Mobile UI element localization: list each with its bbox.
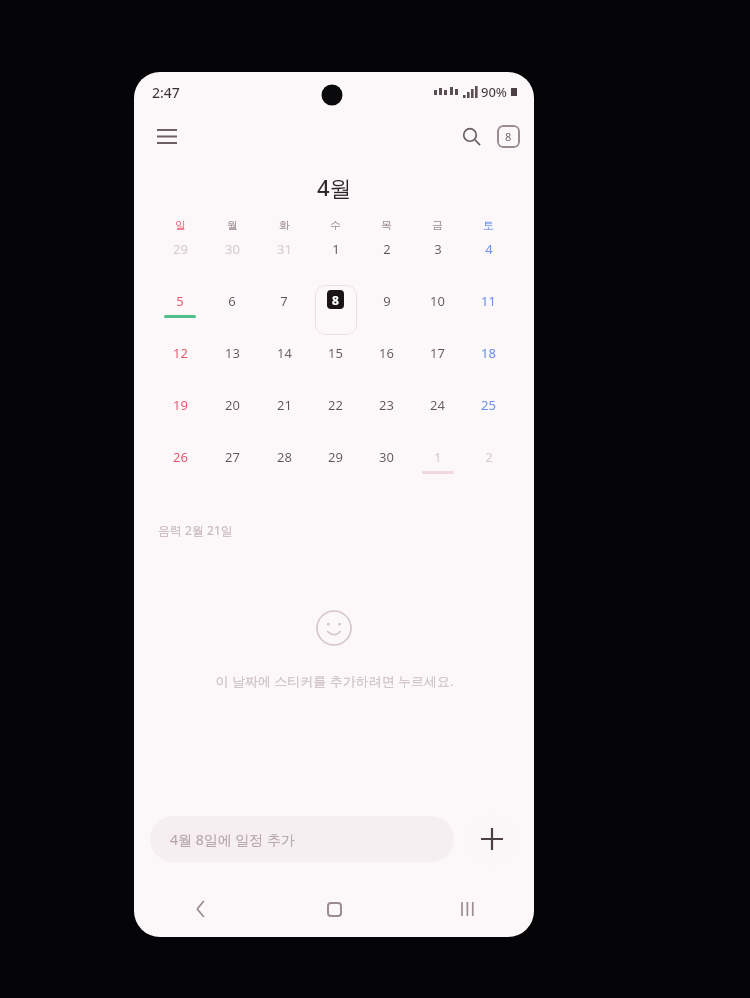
button[interactable]: 4월 8일에 일정 추가: [150, 816, 454, 862]
button[interactable]: 12: [154, 340, 206, 392]
staticText: 26: [173, 448, 188, 466]
button[interactable]: 17: [412, 340, 463, 392]
staticText: 23: [379, 396, 394, 414]
button[interactable]: 4: [463, 236, 514, 288]
button[interactable]: Home: [268, 881, 401, 937]
button[interactable]: 27: [206, 444, 258, 496]
staticText: 29: [173, 240, 188, 258]
staticText: 이 날짜에 스티커를 추가하려면 누르세요.: [215, 672, 454, 690]
staticText: 30: [225, 240, 240, 258]
button[interactable]: 2: [463, 444, 514, 496]
button[interactable]: 28: [258, 444, 310, 496]
button[interactable]: 15: [310, 340, 361, 392]
staticText: 25: [481, 396, 496, 414]
staticText: 10: [430, 292, 445, 310]
staticText: 29: [328, 448, 343, 466]
button[interactable]: 31: [258, 236, 310, 288]
staticText: 7: [280, 292, 288, 310]
staticText: 화: [279, 218, 290, 232]
staticText: 28: [277, 448, 292, 466]
button[interactable]: 9: [361, 288, 412, 340]
staticText: 2: [485, 448, 493, 466]
staticText: 13: [225, 344, 240, 362]
staticText: 12: [173, 344, 188, 362]
button[interactable]: 13: [206, 340, 258, 392]
staticText: 18: [481, 344, 496, 362]
staticText: 11: [481, 292, 496, 310]
staticText: 30: [379, 448, 394, 466]
staticText: 24: [430, 396, 445, 414]
button[interactable]: 이 날짜에 스티커를 추가하려면 누르세요.: [134, 610, 534, 690]
staticText: 2: [383, 240, 391, 258]
button[interactable]: 7: [258, 288, 310, 340]
button[interactable]: 16: [361, 340, 412, 392]
button[interactable]: Menu: [146, 115, 188, 157]
button[interactable]: 14: [258, 340, 310, 392]
button[interactable]: 3: [412, 236, 463, 288]
button[interactable]: 10: [412, 288, 463, 340]
button[interactable]: 5: [154, 288, 206, 340]
button[interactable]: 30: [361, 444, 412, 496]
staticText: 21: [277, 396, 292, 414]
staticText: 27: [225, 448, 240, 466]
staticText: 16: [379, 344, 394, 362]
staticText: 31: [277, 240, 292, 258]
staticText: 목: [381, 218, 392, 232]
button[interactable]: 29: [310, 444, 361, 496]
button[interactable]: Add event: [466, 813, 518, 865]
staticText: 8: [332, 292, 339, 308]
button[interactable]: 26: [154, 444, 206, 496]
button[interactable]: 18: [463, 340, 514, 392]
staticText: 22: [328, 396, 343, 414]
staticText: 17: [430, 344, 445, 362]
button[interactable]: 1: [412, 444, 463, 496]
staticText: 수: [330, 218, 341, 232]
button[interactable]: 25: [463, 392, 514, 444]
staticText: 6: [228, 292, 236, 310]
button[interactable]: 23: [361, 392, 412, 444]
button[interactable]: 1: [310, 236, 361, 288]
button[interactable]: 2: [361, 236, 412, 288]
button[interactable]: 29: [154, 236, 206, 288]
staticText: 1: [434, 448, 442, 466]
button[interactable]: 24: [412, 392, 463, 444]
staticText: 14: [277, 344, 292, 362]
staticText: 5: [176, 292, 184, 310]
staticText: 일: [175, 218, 186, 232]
button[interactable]: 20: [206, 392, 258, 444]
button[interactable]: 6: [206, 288, 258, 340]
button[interactable]: Today: [497, 125, 520, 148]
staticText: 90%: [481, 83, 507, 101]
staticText: 2:47: [152, 83, 180, 102]
button[interactable]: 11: [463, 288, 514, 340]
staticText: 음력 2월 21일: [158, 522, 233, 538]
staticText: 월: [227, 218, 238, 232]
staticText: 19: [173, 396, 188, 414]
staticText: 8: [505, 129, 512, 144]
button[interactable]: 21: [258, 392, 310, 444]
button[interactable]: 19: [154, 392, 206, 444]
staticText: 15: [328, 344, 343, 362]
staticText: 토: [483, 218, 494, 232]
button[interactable]: Back: [134, 881, 268, 937]
staticText: 3: [434, 240, 442, 258]
button[interactable]: 8: [310, 288, 361, 340]
button[interactable]: Search: [451, 116, 491, 156]
staticText: 1: [332, 240, 340, 258]
button[interactable]: Recents: [401, 881, 534, 937]
staticText: 4월 8일에 일정 추가: [170, 830, 295, 849]
button[interactable]: 22: [310, 392, 361, 444]
button[interactable]: 4월: [307, 170, 362, 204]
button[interactable]: 30: [206, 236, 258, 288]
staticText: 4: [485, 240, 493, 258]
staticText: 9: [383, 292, 391, 310]
staticText: 금: [432, 218, 443, 232]
staticText: 20: [225, 396, 240, 414]
staticText: 4월: [317, 172, 352, 202]
